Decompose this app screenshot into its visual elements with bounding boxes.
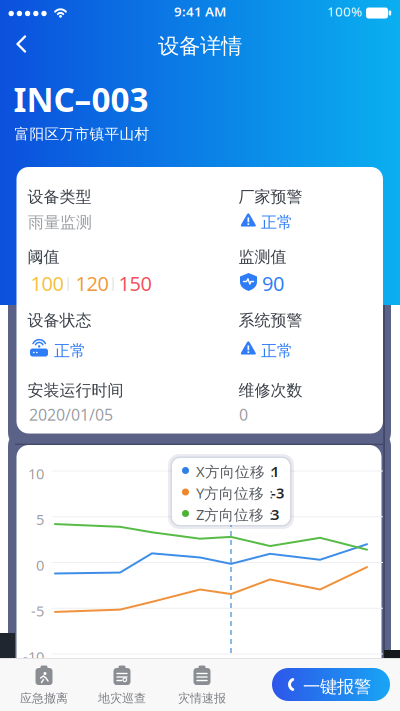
staticText: 150 — [118, 270, 151, 297]
button[interactable]: Back — [0, 0, 44, 60]
staticText: 1 — [271, 461, 279, 481]
staticText: 阈值 — [27, 247, 59, 267]
staticText: 9:41 AM — [174, 2, 226, 20]
staticText: 安装运行时间 — [27, 380, 123, 400]
button[interactable]: 地灾巡查 — [92, 658, 152, 708]
staticText: 应急撤离 — [20, 691, 68, 706]
staticText: 0 — [239, 404, 248, 425]
staticText: Z方向位移： — [196, 504, 279, 524]
staticText: INC–003 — [13, 77, 148, 121]
staticText: 10 — [28, 464, 44, 483]
staticText: 正常 — [54, 341, 86, 361]
staticText: 设备详情 — [158, 33, 242, 59]
button[interactable]: 灾情速报 — [172, 658, 232, 708]
staticText: 正常 — [261, 341, 293, 361]
staticText: 90 — [262, 270, 284, 297]
staticText: -3 — [271, 483, 284, 502]
staticText: 富阳区万市镇平山村 — [14, 125, 149, 143]
staticText: 0 — [36, 555, 44, 575]
staticText: 正常 — [261, 212, 293, 232]
staticText: 系统预警 — [238, 310, 302, 330]
staticText: 雨量监测 — [28, 212, 92, 232]
staticText: 120 — [75, 270, 108, 297]
staticText: 地灾巡查 — [98, 691, 146, 706]
button[interactable]: 应急撤离 — [14, 658, 74, 708]
staticText: 设备类型 — [27, 187, 91, 207]
staticText: 灾情速报 — [178, 691, 226, 706]
button[interactable]: 一键报警 — [272, 668, 390, 701]
staticText: -10 — [23, 647, 44, 666]
staticText: 2020/01/05 — [29, 404, 113, 425]
staticText: 设备状态 — [27, 310, 91, 330]
staticText: 100% — [327, 2, 362, 20]
staticText: 维修次数 — [238, 380, 302, 400]
staticText: Y方向位移： — [196, 483, 279, 503]
staticText: 3 — [271, 504, 279, 524]
staticText: 厂家预警 — [238, 187, 302, 207]
staticText: X方向位移： — [196, 461, 280, 481]
staticText: 5 — [36, 510, 44, 529]
staticText: 100 — [30, 270, 63, 297]
staticText: 一键报警 — [303, 676, 371, 697]
staticText: -5 — [31, 601, 44, 621]
staticText: 监测值 — [238, 247, 286, 267]
